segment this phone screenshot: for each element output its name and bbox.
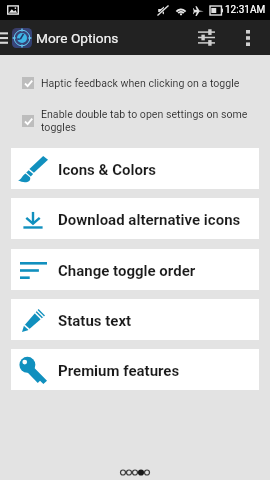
button[interactable]: Status text [11,299,259,340]
button[interactable]: Change toggle order [11,249,259,290]
staticText: Haptic feedback when clicking on a toggl… [41,77,240,89]
staticText: Enable double tab to open settings on so… [41,108,258,134]
button[interactable]: Enable double tab to open settings on so… [0,108,270,134]
button[interactable]: Download alternative icons [11,198,259,239]
staticText: 12:31AM [225,4,266,16]
staticText: Icons & Colors [58,161,157,179]
staticText: Premium features [58,362,180,380]
staticText: Status text [58,312,132,330]
staticText: Download alternative icons [58,211,241,229]
button[interactable]: Premium features [11,349,259,390]
staticText: More Options [36,30,119,46]
button[interactable]: More options [240,20,256,55]
button[interactable]: Open navigation drawer [0,20,10,55]
button[interactable]: Haptic feedback when clicking on a toggl… [0,77,270,89]
button[interactable]: Icons & Colors [11,148,259,189]
staticText: Change toggle order [58,262,196,280]
button[interactable]: Filter settings [194,20,219,55]
